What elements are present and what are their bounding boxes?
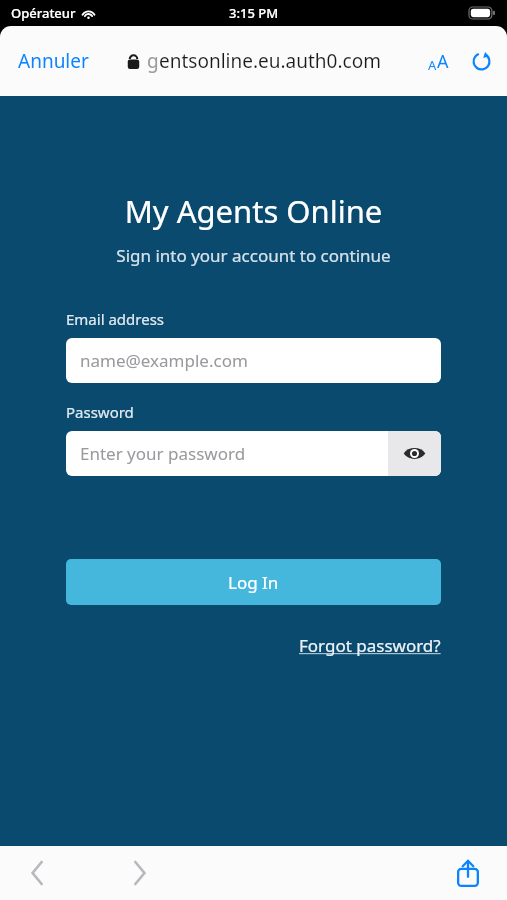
- button[interactable]: Forward: [116, 850, 162, 896]
- button[interactable]: Text size: [423, 45, 454, 78]
- staticText: Sign into your account to continue: [0, 244, 507, 267]
- staticText: A: [428, 56, 437, 74]
- button[interactable]: Forgot password?: [299, 631, 441, 660]
- staticText: Opérateur: [11, 4, 76, 22]
- button[interactable]: Show password: [388, 431, 441, 476]
- staticText: My Agents Online: [0, 190, 507, 232]
- staticText: 3:15 PM: [229, 4, 279, 22]
- button[interactable]: Annuler: [8, 42, 99, 80]
- staticText: name@example.com: [80, 349, 248, 372]
- staticText: g: [147, 48, 159, 74]
- staticText: Log In: [228, 571, 279, 594]
- button[interactable]: Share: [445, 850, 491, 896]
- button[interactable]: Back: [14, 850, 60, 896]
- staticText: entsonline.eu.auth0.com: [159, 48, 381, 74]
- staticText: A: [437, 49, 449, 74]
- button[interactable]: Reload: [466, 46, 497, 77]
- staticText: Forgot password?: [299, 634, 441, 657]
- staticText: Password: [66, 402, 134, 422]
- staticText: Email address: [66, 309, 165, 329]
- button[interactable]: name@example.com: [66, 338, 441, 383]
- button[interactable]: Enter your password: [66, 431, 388, 476]
- button[interactable]: Log In: [66, 559, 441, 605]
- staticText: Enter your password: [80, 442, 246, 465]
- staticText: Annuler: [18, 48, 89, 74]
